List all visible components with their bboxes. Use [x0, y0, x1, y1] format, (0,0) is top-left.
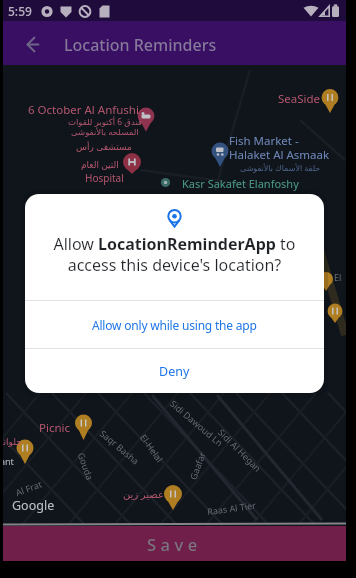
staticText: 6 October Al Anfushi [28, 102, 139, 118]
button[interactable]: Allow only while using the app [25, 301, 324, 348]
staticText: 5:59 [8, 3, 32, 19]
staticText: Google [12, 497, 55, 514]
staticText: Al Frat [14, 478, 43, 498]
staticText: Deny [159, 363, 190, 380]
staticText: المسلحه بالأنفوشى [71, 126, 139, 138]
staticText: Location Reminders [64, 34, 217, 56]
staticText: SeaSide [278, 91, 321, 107]
staticText: فندق 6 أكتوبر للقوات [68, 116, 143, 128]
staticText: مستشفى رأس [76, 140, 132, 152]
staticText: Hospital [85, 171, 124, 185]
staticText: عصير زين [123, 487, 164, 501]
button[interactable]: Save [3, 526, 346, 561]
button[interactable]: Deny [25, 349, 324, 393]
staticText: ant [0, 455, 14, 467]
staticText: Kasr Sakafet Elanfoshy [182, 176, 299, 191]
staticText: Allow only while using the app [92, 317, 257, 333]
staticText: Save [147, 533, 202, 555]
staticText: Allow LocationReminderApp to access this… [53, 233, 296, 276]
staticText: Gaafar [187, 450, 208, 481]
staticText: Sidi Al Hegan [216, 426, 264, 474]
staticText: حلقة الأسماك بالأنفوشى [240, 162, 321, 173]
staticText: Raas Al Tier [206, 499, 257, 517]
staticText: Sidi Dawoud Ln [168, 397, 226, 449]
button[interactable] [3, 21, 47, 65]
staticText: Halaket Al Asmaak [229, 147, 330, 163]
staticText: Saqr Basha [98, 427, 142, 467]
staticText: El [334, 271, 342, 283]
staticText: Gouda [76, 451, 97, 482]
staticText: Fish Market - [229, 133, 299, 149]
staticText: حلواني [0, 437, 22, 447]
staticText: Picnic [39, 420, 71, 436]
staticText: El-Helal [138, 431, 166, 465]
staticText: التين العام [81, 158, 119, 170]
